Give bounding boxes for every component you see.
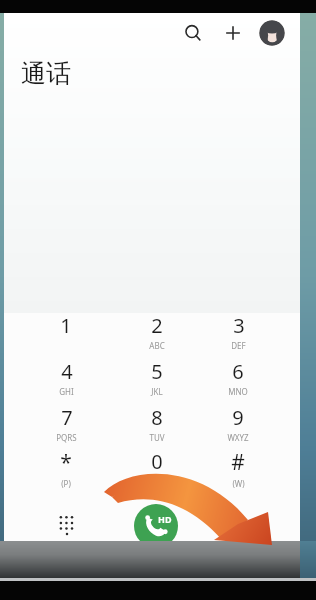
staticText: TUV [149, 432, 165, 443]
staticText: 8 [151, 404, 163, 431]
staticText: PQRS [56, 432, 77, 443]
button[interactable]: Call [134, 504, 178, 548]
button[interactable]: 3 [208, 312, 268, 354]
staticText: * [60, 448, 72, 477]
staticText: JKL [151, 386, 163, 397]
button[interactable]: * [36, 448, 96, 490]
button[interactable]: Add contact [218, 18, 248, 48]
button[interactable]: 1 [36, 312, 96, 354]
staticText: 2 [151, 312, 163, 339]
button[interactable]: 8 [127, 404, 187, 446]
staticText: DEF [231, 340, 246, 351]
staticText: 5 [151, 358, 163, 385]
staticText: MNO [228, 386, 248, 397]
staticText: WXYZ [227, 432, 249, 443]
button[interactable]: Profile [259, 20, 285, 46]
button[interactable]: 2 [127, 312, 187, 354]
staticText: 0 [151, 448, 163, 475]
button[interactable]: 0 [127, 448, 187, 490]
button[interactable]: 7 [36, 404, 96, 446]
button[interactable]: 4 [36, 358, 96, 400]
staticText: HD [158, 513, 172, 525]
button[interactable]: 5 [127, 358, 187, 400]
staticText: 3 [233, 312, 245, 339]
button[interactable]: Search [178, 18, 208, 48]
staticText: (W) [232, 478, 245, 489]
staticText: 4 [61, 358, 73, 385]
staticText: GHI [59, 386, 74, 397]
button[interactable]: # [208, 448, 268, 490]
staticText: 9 [232, 404, 244, 431]
staticText: ABC [149, 340, 165, 351]
button[interactable]: Hide keypad [48, 505, 86, 543]
staticText: (P) [61, 478, 71, 489]
button[interactable]: 9 [208, 404, 268, 446]
staticText: 1 [60, 312, 72, 339]
staticText: 6 [232, 358, 244, 385]
staticText: 通话 [21, 58, 71, 89]
staticText: # [231, 448, 245, 477]
button[interactable]: 6 [208, 358, 268, 400]
staticText: 7 [61, 404, 73, 431]
